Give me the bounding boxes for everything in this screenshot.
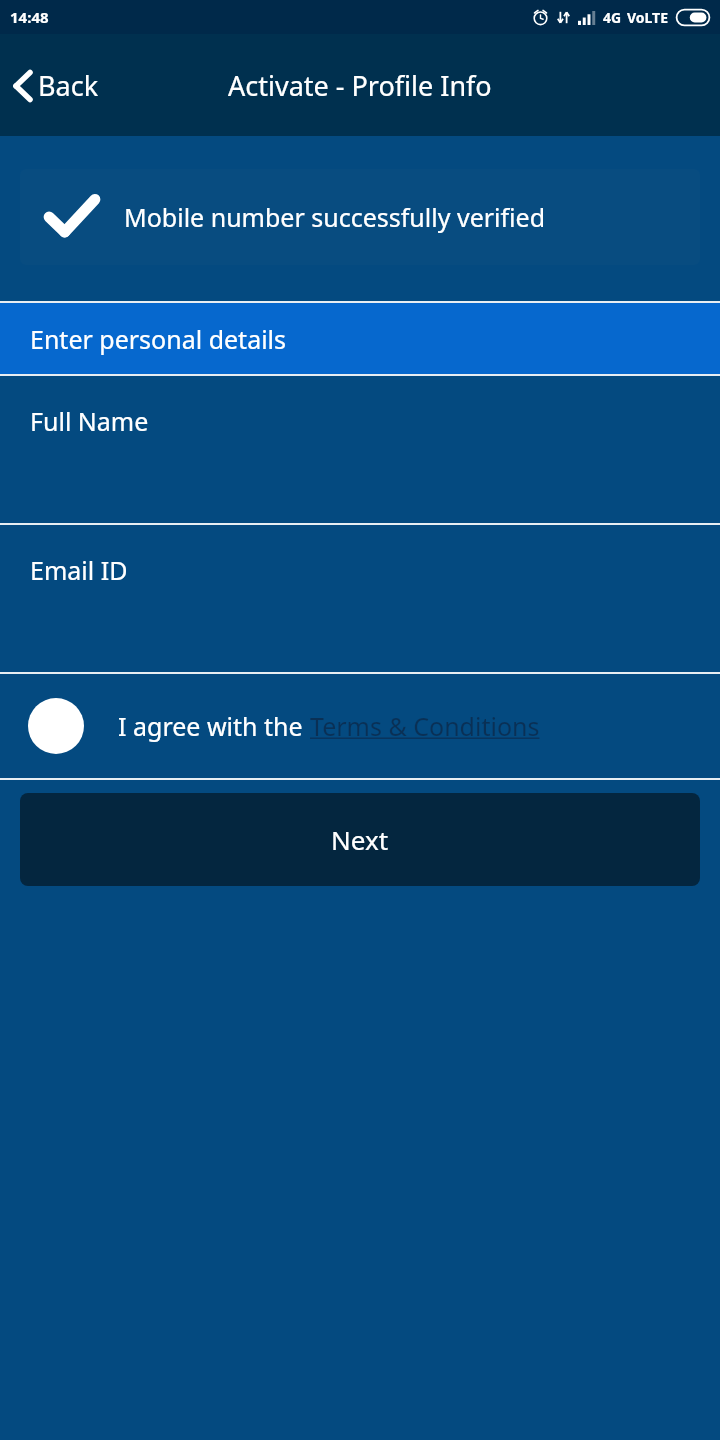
staticText: Email ID: [30, 553, 128, 587]
staticText: I agree with the: [118, 709, 310, 743]
staticText: Enter personal details: [30, 322, 287, 356]
button[interactable]: Mobile number successfully verified: [20, 169, 700, 265]
button[interactable]: I agree with the: [0, 674, 720, 778]
staticText: Activate - Profile Info: [228, 67, 492, 104]
button[interactable]: Back: [0, 57, 115, 114]
button[interactable]: Email ID: [0, 525, 720, 672]
staticText: Mobile number successfully verified: [124, 200, 546, 234]
staticText: 4G: [603, 8, 622, 27]
staticText: Full Name: [30, 404, 149, 438]
staticText: Back: [38, 67, 99, 104]
button[interactable]: Next: [20, 793, 700, 886]
staticText: VoLTE: [627, 8, 669, 27]
staticText: Next: [331, 822, 389, 857]
button[interactable]: Enter personal details: [0, 303, 720, 374]
staticText: 14:48: [10, 7, 49, 27]
button[interactable]: Terms & Conditions: [310, 709, 540, 743]
button[interactable]: Full Name: [0, 376, 720, 523]
